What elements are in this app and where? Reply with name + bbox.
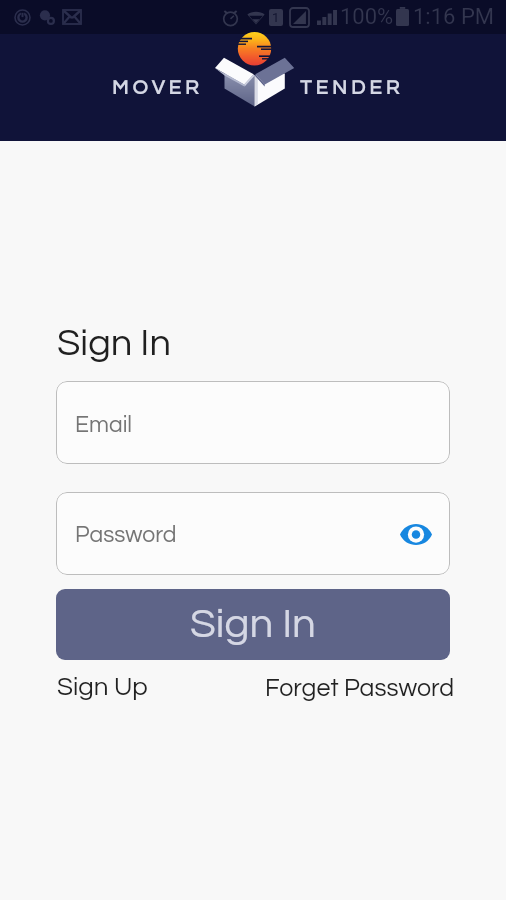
staticText: Password: [75, 523, 177, 547]
button[interactable]: Email: [56, 381, 450, 464]
button[interactable]: Sign Up: [57, 674, 148, 701]
staticText: Sign In: [190, 603, 316, 646]
staticText: Sign In: [57, 324, 171, 363]
staticText: Email: [75, 413, 133, 437]
staticText: 1: [272, 10, 280, 25]
button[interactable]: Sign In: [56, 589, 450, 660]
staticText: Forget Password: [265, 675, 455, 701]
button[interactable]: Show password: [396, 514, 436, 554]
staticText: T E N D E R: [300, 78, 400, 99]
staticText: 1:16 PM: [413, 4, 494, 30]
staticText: M O V E R: [112, 78, 199, 99]
staticText: Sign Up: [57, 674, 148, 701]
staticText: 100%: [340, 4, 394, 30]
button[interactable]: Password: [56, 492, 450, 575]
button[interactable]: Forget Password: [265, 675, 455, 701]
